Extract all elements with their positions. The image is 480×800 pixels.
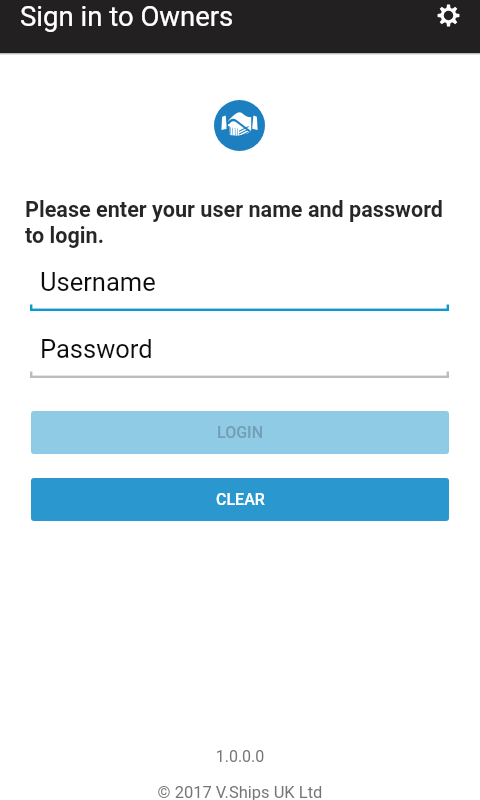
button[interactable]: Settings bbox=[437, 4, 460, 27]
staticText: LOGIN bbox=[217, 423, 263, 442]
staticText: Please enter your user name and password… bbox=[25, 197, 455, 248]
button[interactable]: Password bbox=[30, 333, 449, 380]
staticText: Sign in to Owners bbox=[20, 0, 234, 32]
staticText: 1.0.0.0 bbox=[0, 747, 480, 766]
staticText: Password bbox=[40, 334, 153, 364]
button[interactable]: LOGIN bbox=[31, 411, 449, 454]
button[interactable]: Username bbox=[30, 266, 449, 313]
staticText: Username bbox=[40, 267, 156, 297]
button[interactable]: CLEAR bbox=[31, 478, 449, 521]
staticText: CLEAR bbox=[216, 490, 265, 509]
staticText: © 2017 V.Ships UK Ltd bbox=[0, 783, 480, 800]
